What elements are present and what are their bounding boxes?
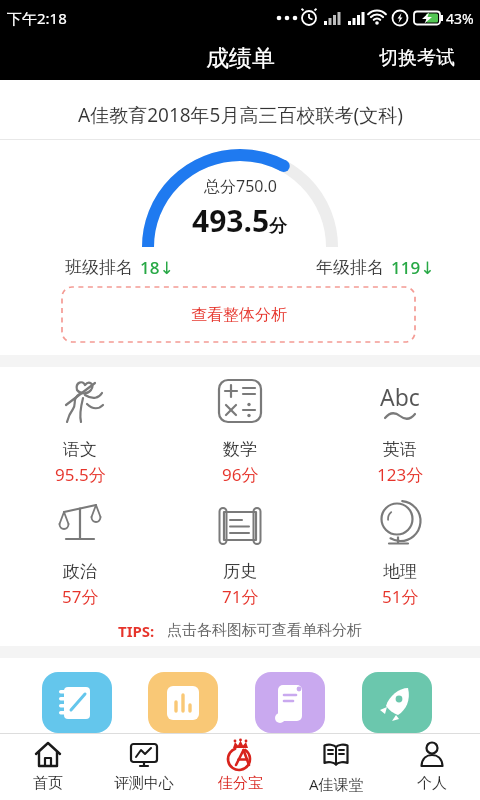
staticText: 51分 [382, 585, 419, 608]
staticText: 123分 [377, 463, 424, 486]
staticText: 年级排名 [316, 257, 384, 278]
staticText: 总分750.0 [204, 175, 277, 197]
staticText: 首页 [33, 774, 63, 793]
staticText: 点击各科图标可查看单科分析 [167, 621, 362, 640]
button[interactable] [362, 672, 432, 733]
button[interactable]: 佳分宝 [192, 734, 288, 800]
staticText: A佳教育2018年5月高三百校联考(文科) [78, 102, 403, 128]
staticText: 查看整体分析 [191, 305, 287, 325]
staticText: TIPS: [118, 621, 155, 641]
button[interactable]: 历史 [160, 490, 320, 615]
button[interactable]: 查看整体分析 [62, 287, 415, 342]
staticText: 班级排名 [65, 257, 133, 278]
button[interactable]: Abc [320, 367, 480, 490]
staticText: Abc [380, 381, 420, 412]
staticText: A佳课堂 [309, 774, 364, 794]
staticText: 71分 [222, 585, 259, 608]
staticText: 96分 [222, 463, 259, 486]
staticText: 政治 [63, 561, 97, 582]
staticText: 佳分宝 [218, 774, 263, 793]
staticText: 95.5分 [55, 463, 106, 486]
staticText: 个人 [417, 774, 447, 793]
button[interactable] [42, 672, 112, 733]
button[interactable]: 政治 [0, 490, 160, 615]
staticText: 43% [446, 9, 474, 28]
button[interactable] [148, 672, 218, 733]
staticText: 数学 [223, 439, 257, 460]
staticText: 历史 [223, 561, 257, 582]
staticText: 493.5分 [192, 200, 288, 241]
button[interactable]: 切换考试 [379, 46, 455, 70]
button[interactable]: A佳课堂 [288, 734, 384, 800]
staticText: 评测中心 [114, 774, 174, 793]
staticText: 地理 [383, 561, 417, 582]
staticText: 英语 [383, 439, 417, 460]
staticText: 119↓ [391, 256, 435, 279]
button[interactable]: 首页 [0, 734, 96, 800]
staticText: 语文 [63, 439, 97, 460]
staticText: 57分 [62, 585, 99, 608]
staticText: 18↓ [140, 256, 174, 279]
staticText: 切换考试 [379, 46, 455, 70]
button[interactable]: 个人 [384, 734, 480, 800]
button[interactable]: 数学 [160, 367, 320, 490]
staticText: 下午2:18 [7, 8, 67, 28]
button[interactable]: 评测中心 [96, 734, 192, 800]
button[interactable] [255, 672, 325, 733]
staticText: 成绩单 [206, 44, 275, 73]
button[interactable]: 语文 [0, 367, 160, 490]
button[interactable]: 地理 [320, 490, 480, 615]
